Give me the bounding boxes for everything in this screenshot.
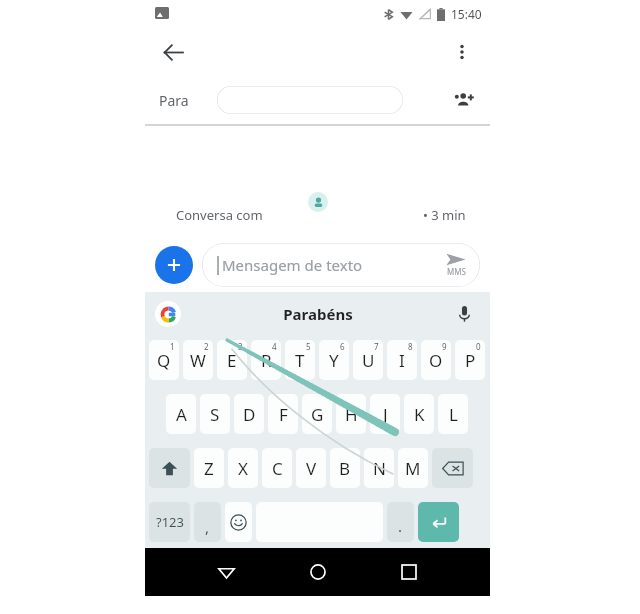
button[interactable]: Google: [155, 301, 181, 327]
staticText: N: [373, 457, 386, 480]
button[interactable]: Parabéns: [283, 304, 353, 324]
staticText: 2: [204, 341, 209, 352]
button[interactable]: [217, 86, 403, 114]
staticText: 8: [408, 341, 413, 352]
staticText: X: [238, 457, 248, 480]
button[interactable]: S: [200, 394, 230, 434]
staticText: V: [306, 457, 317, 480]
staticText: G: [311, 403, 324, 426]
button[interactable]: Emoji: [225, 502, 252, 542]
staticText: 5: [306, 341, 311, 352]
button[interactable]: C: [262, 448, 292, 488]
staticText: U: [362, 349, 375, 372]
button[interactable]: W: [183, 340, 213, 380]
staticText: Q: [157, 349, 171, 372]
button[interactable]: Add people: [446, 82, 482, 118]
staticText: T: [295, 349, 305, 372]
button[interactable]: Home: [272, 549, 363, 595]
button[interactable]: A: [166, 394, 196, 434]
staticText: Y: [329, 349, 339, 372]
staticText: S: [210, 403, 220, 426]
staticText: B: [339, 457, 351, 480]
staticText: 0: [476, 341, 481, 352]
button[interactable]: H: [336, 394, 366, 434]
button[interactable]: K: [404, 394, 434, 434]
button[interactable]: T: [285, 340, 315, 380]
button[interactable]: .: [387, 502, 414, 542]
button[interactable]: Back: [181, 549, 272, 595]
staticText: 1: [170, 341, 175, 352]
staticText: 4: [272, 341, 277, 352]
button[interactable]: D: [234, 394, 264, 434]
staticText: R: [261, 349, 272, 372]
button[interactable]: Voice input: [450, 300, 478, 328]
button[interactable]: Mensagem de texto: [202, 243, 480, 287]
button[interactable]: P: [455, 340, 485, 380]
staticText: Conversa com: [176, 206, 263, 224]
button[interactable]: B: [330, 448, 360, 488]
button[interactable]: O: [421, 340, 451, 380]
button[interactable]: X: [228, 448, 258, 488]
button[interactable]: Y: [319, 340, 349, 380]
staticText: ?123: [156, 513, 184, 531]
button[interactable]: E: [217, 340, 247, 380]
staticText: K: [414, 403, 425, 426]
button[interactable]: Add attachment: [155, 246, 193, 284]
staticText: C: [272, 457, 283, 480]
button[interactable]: ?123: [149, 502, 190, 542]
button[interactable]: Z: [194, 448, 224, 488]
staticText: .: [398, 516, 403, 536]
button[interactable]: J: [370, 394, 400, 434]
button[interactable]: V: [296, 448, 326, 488]
staticText: M: [405, 457, 421, 480]
button[interactable]: Q: [149, 340, 179, 380]
staticText: MMS: [447, 266, 466, 277]
button[interactable]: Back: [155, 34, 191, 70]
staticText: 7: [374, 341, 379, 352]
staticText: E: [227, 349, 237, 372]
button[interactable]: ,: [194, 502, 221, 542]
button[interactable]: N: [364, 448, 394, 488]
staticText: O: [429, 349, 443, 372]
staticText: D: [243, 403, 256, 426]
staticText: 9: [442, 341, 447, 352]
button[interactable]: Shift: [149, 448, 190, 488]
staticText: L: [449, 403, 458, 426]
button[interactable]: L: [438, 394, 468, 434]
staticText: Para: [159, 91, 189, 110]
button[interactable]: Backspace: [432, 448, 473, 488]
staticText: 6: [340, 341, 345, 352]
staticText: H: [345, 403, 358, 426]
button[interactable]: Send MMS: [446, 253, 466, 277]
staticText: • 3 min: [423, 206, 466, 224]
staticText: Mensagem de texto: [222, 255, 363, 275]
staticText: J: [383, 403, 388, 426]
staticText: F: [279, 403, 288, 426]
button[interactable]: Enter: [418, 502, 459, 542]
button[interactable]: Recents: [363, 549, 454, 595]
staticText: ,: [205, 517, 210, 537]
button[interactable]: I: [387, 340, 417, 380]
button[interactable]: F: [268, 394, 298, 434]
staticText: 3: [238, 341, 243, 352]
staticText: Z: [204, 457, 214, 480]
button[interactable]: More options: [444, 34, 480, 70]
staticText: I: [399, 349, 405, 372]
button[interactable]: G: [302, 394, 332, 434]
staticText: W: [190, 349, 206, 372]
button[interactable]: M: [398, 448, 428, 488]
button[interactable]: R: [251, 340, 281, 380]
button[interactable]: U: [353, 340, 383, 380]
staticText: P: [465, 349, 476, 372]
staticText: A: [176, 403, 187, 426]
staticText: 15:40: [451, 6, 482, 22]
